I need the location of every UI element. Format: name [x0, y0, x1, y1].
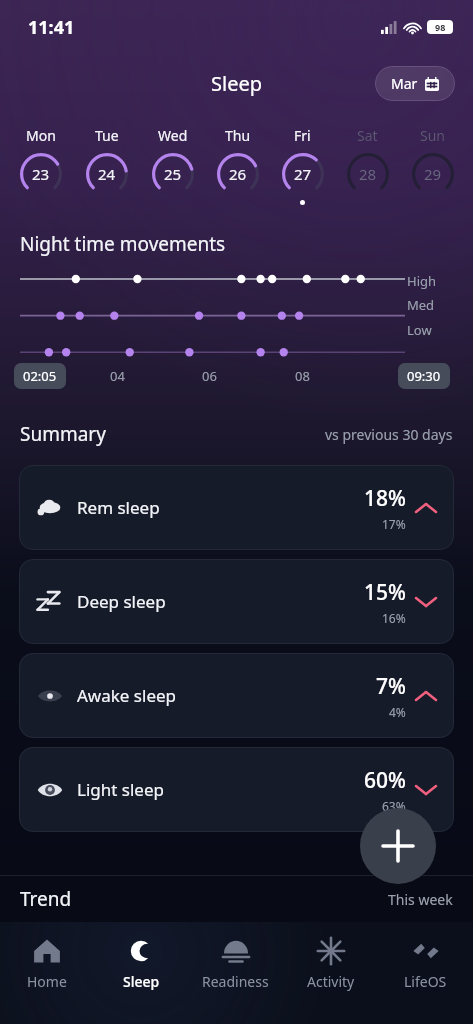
button[interactable]: Wed: [140, 126, 205, 205]
button[interactable]: Deep sleep: [19, 559, 454, 644]
staticText: 24: [98, 164, 116, 184]
staticText: Readiness: [202, 972, 269, 991]
staticText: 28: [359, 164, 377, 184]
staticText: 7%: [376, 672, 406, 701]
button[interactable]: Mon: [8, 126, 74, 205]
staticText: 25: [164, 164, 182, 184]
staticText: Wed: [158, 126, 188, 145]
staticText: 23: [32, 164, 50, 184]
staticText: Med: [407, 296, 435, 314]
staticText: Sun: [420, 126, 445, 145]
staticText: Mon: [26, 126, 56, 145]
staticText: 63%: [382, 798, 406, 814]
staticText: 02:05: [23, 367, 57, 385]
staticText: This week: [388, 890, 453, 909]
staticText: Thu: [225, 126, 251, 145]
staticText: Awake sleep: [77, 684, 177, 707]
staticText: LifeOS: [404, 972, 447, 991]
button[interactable]: Sleep: [94, 936, 188, 991]
button[interactable]: Home: [0, 936, 94, 991]
staticText: Summary: [20, 421, 106, 447]
button[interactable]: Sat: [335, 126, 400, 205]
staticText: 27: [294, 164, 312, 184]
staticText: Deep sleep: [77, 590, 166, 613]
staticText: 4%: [389, 704, 406, 720]
staticText: 26: [229, 164, 247, 184]
staticText: 09:30: [407, 367, 441, 385]
button[interactable]: Add: [360, 808, 436, 884]
staticText: 16%: [382, 610, 406, 626]
staticText: High: [407, 272, 437, 290]
staticText: 04: [110, 367, 125, 385]
staticText: Light sleep: [77, 778, 164, 801]
staticText: Low: [407, 321, 432, 339]
staticText: Sleep: [211, 70, 262, 97]
button[interactable]: Light sleep: [19, 747, 454, 832]
staticText: Sat: [357, 126, 378, 145]
staticText: Mar: [391, 74, 418, 93]
staticText: Home: [27, 972, 67, 991]
button[interactable]: Readiness: [188, 936, 283, 991]
staticText: Sleep: [123, 972, 160, 991]
staticText: Activity: [307, 972, 355, 991]
staticText: 06: [202, 367, 217, 385]
button[interactable]: Rem sleep: [19, 465, 454, 550]
staticText: 11:41: [28, 15, 75, 40]
button[interactable]: Sun: [400, 126, 465, 205]
staticText: Fri: [294, 126, 311, 145]
staticText: Night time movements: [20, 231, 226, 257]
staticText: 18%: [364, 484, 406, 513]
staticText: 17%: [382, 516, 406, 532]
staticText: Trend: [20, 886, 72, 912]
staticText: 08: [295, 367, 310, 385]
button[interactable]: Activity: [283, 936, 378, 991]
staticText: 29: [424, 164, 442, 184]
staticText: Rem sleep: [77, 496, 160, 519]
button[interactable]: Thu: [205, 126, 270, 205]
staticText: Tue: [95, 126, 119, 145]
button[interactable]: Mar: [375, 66, 455, 101]
button[interactable]: Awake sleep: [19, 653, 454, 738]
staticText: 98: [435, 21, 446, 33]
button[interactable]: Tue: [74, 126, 140, 205]
staticText: 15%: [364, 578, 406, 607]
button[interactable]: Fri: [270, 126, 335, 205]
staticText: 60%: [364, 766, 406, 795]
button[interactable]: LifeOS: [378, 936, 473, 991]
staticText: vs previous 30 days: [325, 425, 453, 444]
